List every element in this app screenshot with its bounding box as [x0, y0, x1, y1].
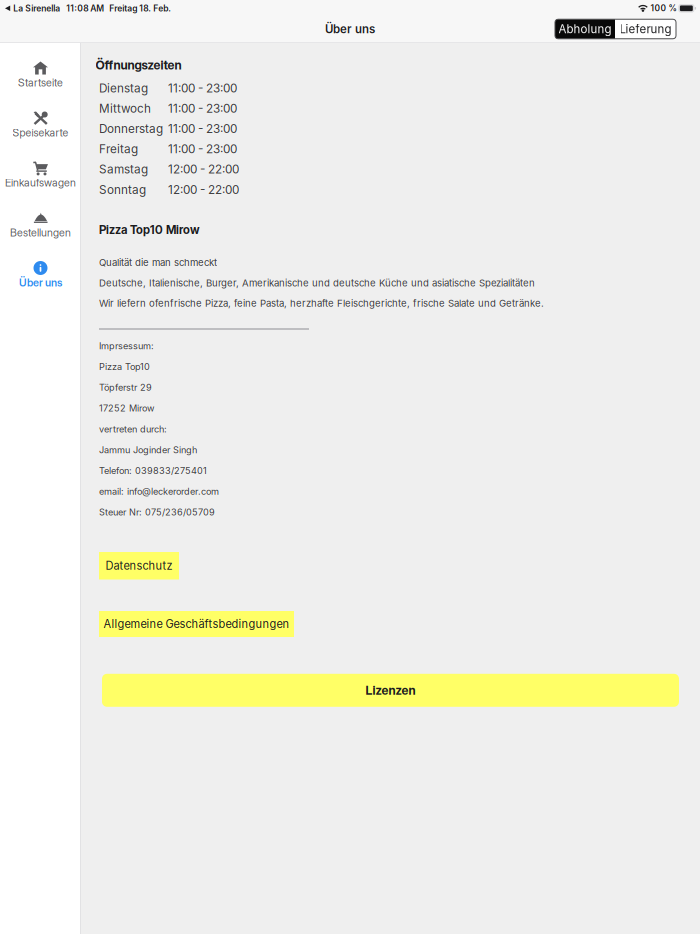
staticText: Dienstag — [99, 81, 148, 95]
staticText: Datenschutz — [105, 559, 172, 572]
staticText: Wir liefern ofenfrische Pizza, feine Pas… — [99, 297, 544, 309]
button[interactable]: Über uns — [0, 248, 81, 298]
staticText: Samstag — [99, 162, 148, 176]
staticText: Deutsche, Italienische, Burger, Amerikan… — [99, 277, 535, 289]
button[interactable]: Datenschutz — [99, 552, 179, 579]
button[interactable]: Lizenzen — [102, 674, 679, 707]
staticText: 11:00 - 23:00 — [168, 81, 237, 95]
staticText: 11:08 AM — [66, 3, 104, 13]
staticText: Telefon: 039833/275401 — [99, 465, 207, 476]
staticText: Pizza Top10 — [99, 361, 150, 372]
staticText: Lieferung — [619, 22, 671, 36]
staticText: Speisekarte — [12, 126, 68, 139]
staticText: Qualität die man schmeckt — [99, 257, 217, 268]
button[interactable]: Abholung — [555, 19, 615, 39]
staticText: 12:00 - 22:00 — [168, 162, 239, 176]
staticText: Über uns — [325, 22, 375, 36]
staticText: Lizenzen — [365, 683, 415, 698]
staticText: La Sirenella — [13, 3, 60, 13]
button[interactable]: Bestellungen — [0, 198, 81, 248]
staticText: Steuer Nr: 075/236/05709 — [99, 507, 215, 518]
button[interactable]: Speisekarte — [0, 98, 81, 148]
staticText: Sonntag — [99, 183, 146, 197]
staticText: 12:00 - 22:00 — [168, 183, 239, 197]
staticText: 11:00 - 23:00 — [168, 101, 237, 116]
staticText: Freitag — [99, 142, 138, 156]
staticText: Freitag 18. Feb. — [109, 3, 171, 13]
staticText: Über uns — [19, 276, 62, 289]
button[interactable]: Allgemeine Geschäftsbedingungen — [99, 611, 294, 637]
staticText: Mittwoch — [99, 101, 151, 116]
staticText: Jammu Joginder Singh — [99, 444, 197, 455]
staticText: vertreten durch: — [99, 424, 167, 435]
button[interactable]: Einkaufswagen — [0, 148, 81, 198]
button[interactable]: Lieferung — [615, 19, 676, 39]
staticText: 17252 Mirow — [99, 403, 154, 414]
staticText: Abholung — [558, 22, 611, 36]
staticText: 11:00 - 23:00 — [168, 142, 237, 156]
staticText: Pizza Top10 Mirow — [99, 223, 200, 237]
staticText: 100 % — [650, 3, 676, 13]
staticText: Imprsessum: — [99, 340, 154, 351]
button[interactable]: Startseite — [0, 48, 81, 98]
staticText: Töpferstr 29 — [99, 382, 152, 393]
staticText: Bestellungen — [10, 226, 71, 239]
staticText: Öffnungszeiten — [95, 58, 181, 72]
staticText: Einkaufswagen — [5, 176, 76, 189]
staticText: email: info@leckerorder.com — [99, 486, 219, 497]
staticText: Donnerstag — [99, 122, 163, 136]
staticText: Allgemeine Geschäftsbedingungen — [103, 617, 289, 631]
staticText: Startseite — [18, 76, 63, 89]
staticText: 11:00 - 23:00 — [168, 122, 237, 136]
button[interactable]: Back to La Sirenella — [5, 3, 60, 13]
